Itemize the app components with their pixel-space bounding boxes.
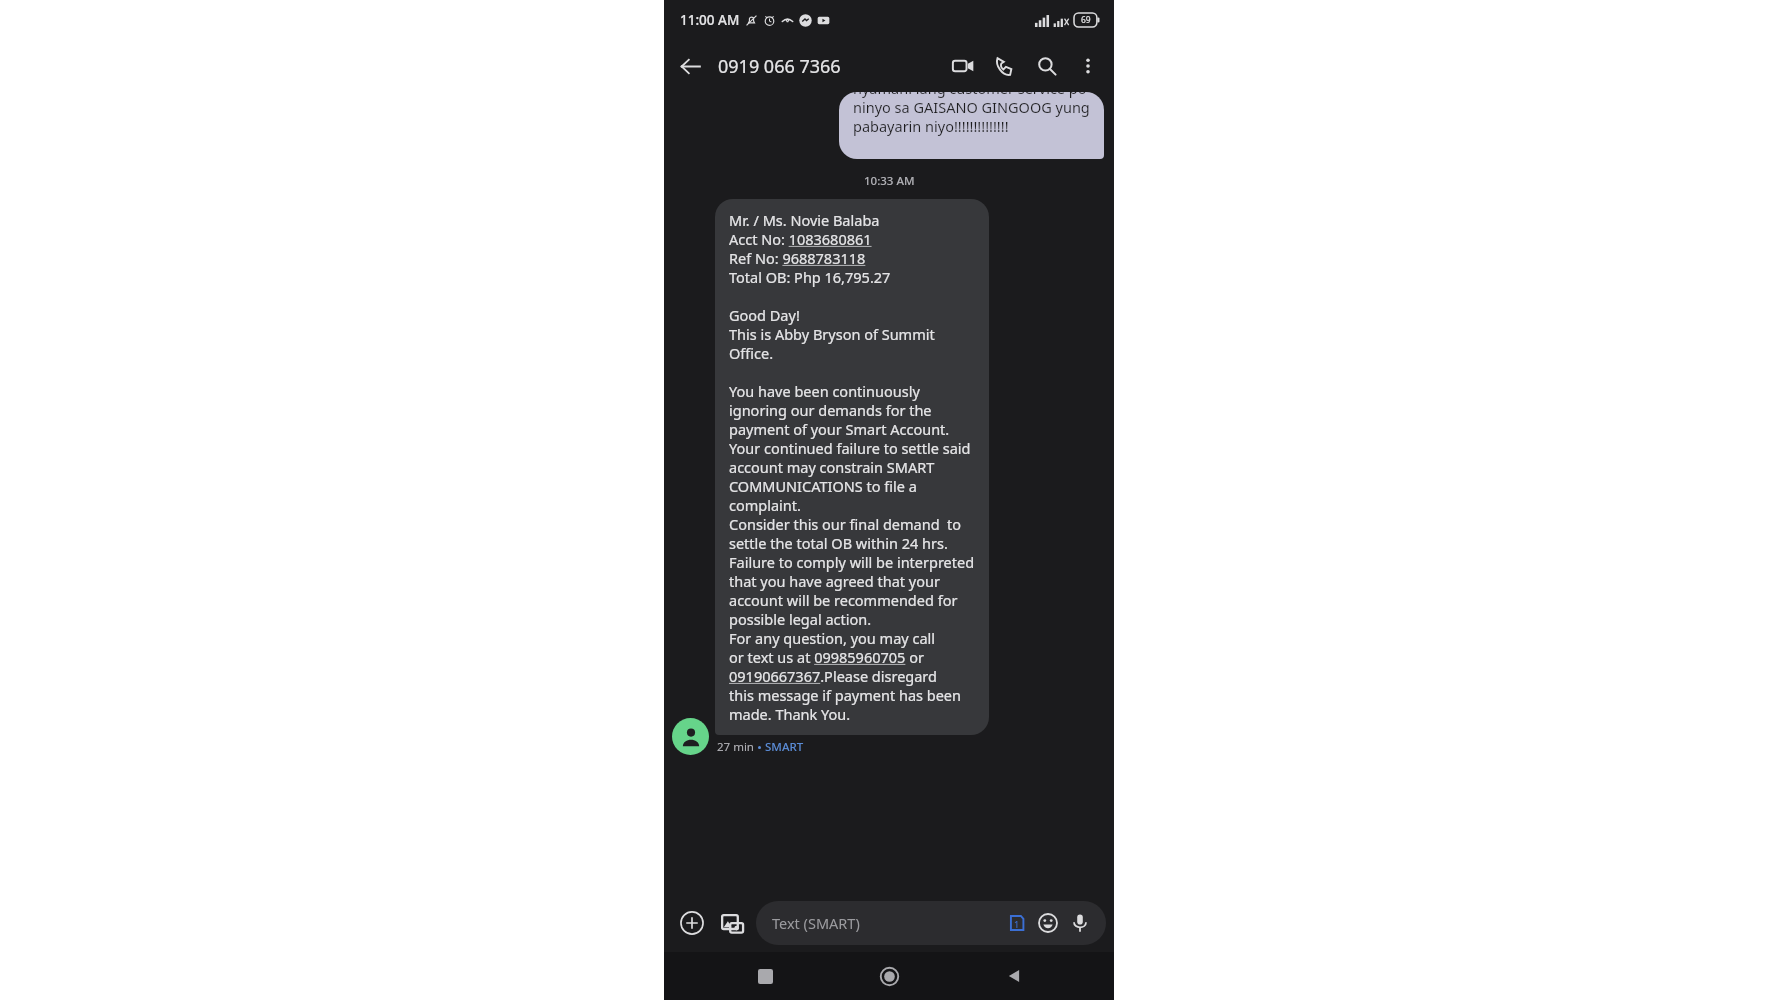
- button[interactable]: Recent apps: [741, 952, 789, 1000]
- staticText: 10:33 AM: [864, 173, 915, 189]
- staticText: 27 min: [717, 739, 754, 755]
- staticText: SMART: [765, 739, 804, 755]
- button[interactable]: Contact avatar: [672, 718, 709, 755]
- button[interactable]: SIM 1: [1002, 908, 1032, 938]
- button[interactable]: nyaman. lang customer service po ninyo s…: [839, 92, 1104, 159]
- button[interactable]: Mr. / Ms. Novie Balaba Acct No: 10836808…: [715, 199, 989, 735]
- button[interactable]: Emoji: [1032, 907, 1064, 939]
- button[interactable]: Video call: [942, 45, 984, 87]
- button[interactable]: Camera and gallery: [712, 903, 752, 943]
- button[interactable]: Add attachment: [672, 903, 712, 943]
- staticText: nyaman. lang customer service po ninyo s…: [853, 92, 1090, 136]
- staticText: 11:00 AM: [680, 11, 740, 29]
- button[interactable]: More options: [1068, 46, 1108, 86]
- staticText: Mr. / Ms. Novie Balaba Acct No: 10836808…: [729, 210, 975, 724]
- button[interactable]: Back: [670, 46, 710, 86]
- button[interactable]: Search: [1026, 45, 1068, 87]
- staticText: Text (SMART): [772, 913, 1002, 933]
- button[interactable]: Call: [984, 45, 1026, 87]
- button[interactable]: Home: [865, 952, 913, 1000]
- staticText: 1: [1014, 918, 1020, 930]
- button[interactable]: 0919 066 7366: [718, 54, 942, 79]
- staticText: 69: [1081, 14, 1091, 26]
- button[interactable]: Back: [990, 952, 1038, 1000]
- button[interactable]: Text (SMART): [756, 901, 1106, 945]
- button[interactable]: Voice input: [1064, 907, 1096, 939]
- staticText: 0919 066 7366: [718, 54, 841, 79]
